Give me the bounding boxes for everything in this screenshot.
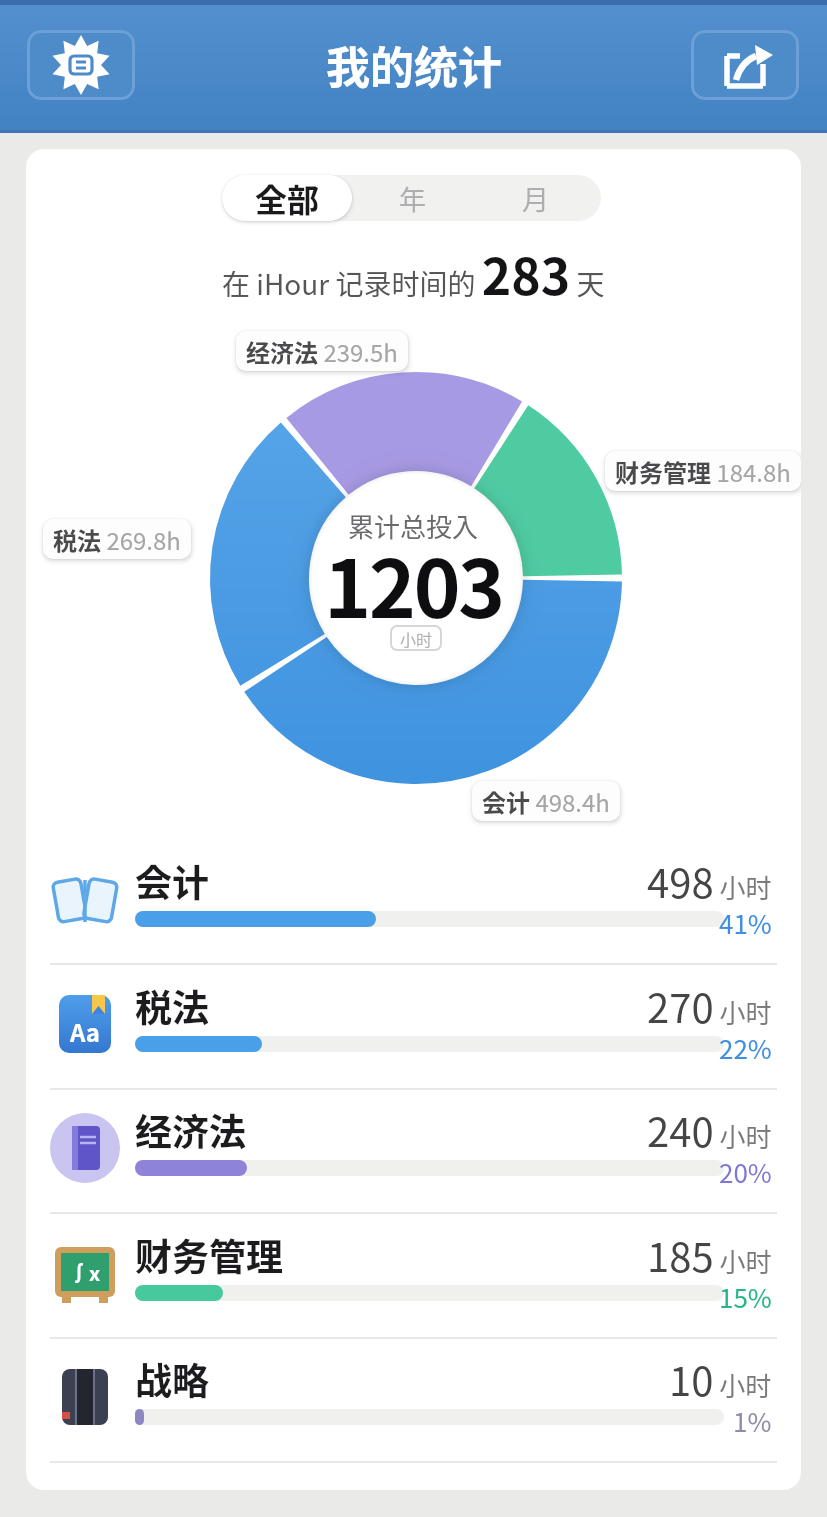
staticText: 1% (733, 1402, 772, 1432)
staticText: 经济法 (135, 1103, 246, 1155)
staticText: 会计 498.4h (482, 784, 610, 818)
staticText: 月 (522, 179, 549, 218)
staticText: 财务管理 (135, 1228, 283, 1280)
staticText: 年 (399, 179, 426, 218)
staticText: 会计 (135, 854, 209, 906)
staticText: 财务管理 184.8h (615, 454, 791, 488)
staticText: 270 小时 (647, 977, 772, 1035)
staticText: 10 小时 (669, 1350, 772, 1408)
staticText: 41% (719, 904, 772, 934)
staticText: 240 小时 (647, 1101, 772, 1159)
staticText: 22% (719, 1029, 772, 1059)
staticText: 小时 (400, 627, 433, 650)
staticText: 累计总投入 (348, 507, 479, 545)
staticText: 税法 (135, 979, 209, 1031)
staticText: 498 小时 (647, 852, 772, 910)
staticText: 税法 269.8h (53, 522, 181, 556)
staticText: Aa (70, 1014, 101, 1049)
staticText: 15% (719, 1278, 772, 1308)
staticText: 经济法 239.5h (246, 334, 398, 368)
staticText: 185 小时 (647, 1226, 772, 1284)
staticText: 1203 (324, 525, 503, 635)
staticText: 全部 (255, 175, 320, 221)
staticText: 在 iHour 记录时间的 283 天 (222, 237, 605, 309)
staticText: ∫x (69, 1258, 101, 1287)
staticText: 我的统计 (326, 33, 502, 97)
staticText: 20% (719, 1153, 772, 1183)
staticText: 战略 (135, 1352, 209, 1404)
